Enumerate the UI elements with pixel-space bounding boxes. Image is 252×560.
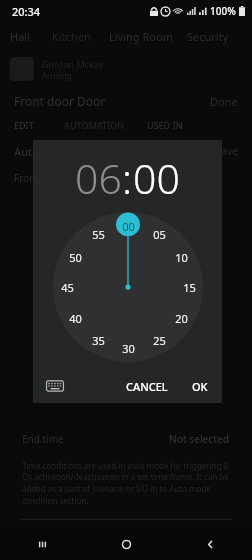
- staticText: Save: [216, 144, 238, 158]
- staticText: Security: [187, 29, 229, 44]
- staticText: Not selected: [169, 432, 230, 446]
- staticText: 45: [61, 280, 74, 295]
- staticText: Auto mode: [14, 144, 73, 159]
- staticText: 25: [153, 333, 166, 348]
- button[interactable]: CANCEL: [118, 373, 176, 400]
- button[interactable]: Home: [84, 528, 168, 560]
- staticText: Arriving: [42, 70, 72, 81]
- staticText: OK: [192, 379, 208, 394]
- staticText: End time: [22, 432, 64, 446]
- staticText: From: [14, 171, 39, 185]
- button[interactable]: Switch to keyboard input: [46, 377, 64, 395]
- staticText: 50: [69, 250, 82, 265]
- button[interactable]: Done: [210, 94, 238, 109]
- button[interactable]: 00: [133, 150, 180, 206]
- staticText: 05: [153, 227, 166, 242]
- staticText: Front door will unlock when: [14, 534, 136, 546]
- staticText: 40: [69, 311, 82, 326]
- staticText: 10: [175, 250, 188, 265]
- staticText: Gordon Mckay: [42, 58, 104, 70]
- staticText: 20:34: [12, 4, 41, 19]
- button[interactable]: AUTOMATION: [64, 119, 125, 131]
- button[interactable]: Back: [168, 528, 252, 560]
- staticText: CANCEL: [126, 379, 168, 394]
- staticText: Front door Door: [14, 93, 106, 109]
- staticText: Living Room: [109, 29, 173, 44]
- staticText: 20: [175, 311, 188, 326]
- button[interactable]: 06: [75, 150, 122, 206]
- staticText: 100%: [210, 4, 236, 18]
- staticText: 30: [122, 341, 135, 356]
- staticText: Hall: [10, 29, 30, 44]
- staticText: 00: [122, 219, 135, 234]
- button[interactable]: EDIT: [14, 119, 34, 131]
- staticText: 35: [92, 333, 105, 348]
- button[interactable]: Recents: [0, 528, 84, 560]
- button[interactable]: USED IN: [147, 119, 183, 131]
- staticText: 15: [183, 280, 196, 295]
- staticText: :: [122, 150, 133, 206]
- button[interactable]: OK: [184, 373, 216, 400]
- staticText: Time conditions are used in auto mode fo…: [22, 460, 230, 507]
- staticText: 55: [92, 227, 105, 242]
- staticText: Kitchen: [52, 29, 91, 44]
- staticText: 00:00 on Every day: [136, 534, 217, 546]
